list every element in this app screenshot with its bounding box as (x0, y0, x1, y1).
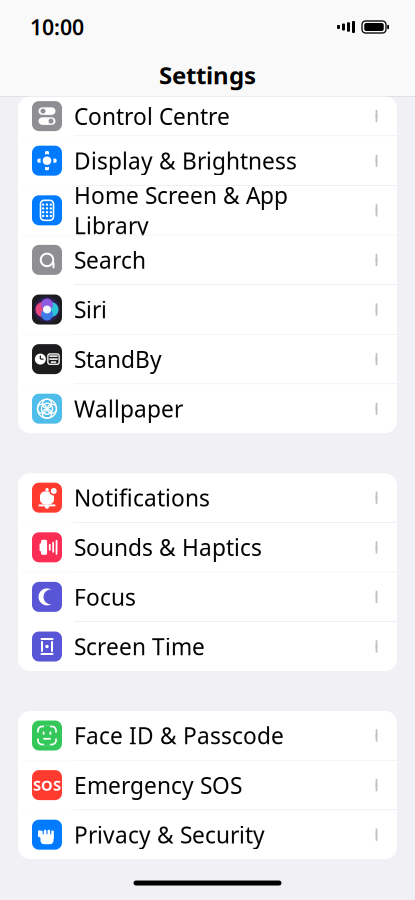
button[interactable]: Control Centre (18, 97, 397, 136)
staticText: Wallpaper (74, 394, 183, 424)
staticText: Notifications (74, 483, 210, 513)
staticText: Emergency SOS (74, 770, 242, 800)
button[interactable]: Face ID & Passcode (18, 711, 397, 761)
button[interactable]: SOS (18, 761, 397, 810)
staticText: Display & Brightness (74, 146, 297, 176)
button[interactable]: Sounds & Haptics (18, 523, 397, 572)
staticText: Sounds & Haptics (74, 532, 262, 562)
button[interactable]: Search (18, 235, 397, 285)
button[interactable]: Display & Brightness (18, 136, 397, 186)
staticText: Siri (74, 294, 107, 324)
staticText: Privacy & Security (74, 820, 265, 850)
staticText: Control Centre (74, 101, 230, 131)
button[interactable]: Notifications (18, 473, 397, 523)
staticText: Settings (159, 59, 256, 91)
staticText: 10:00 (30, 13, 84, 41)
button[interactable]: StandBy (18, 335, 397, 384)
staticText: Face ID & Passcode (74, 720, 284, 750)
button[interactable]: Wallpaper (18, 384, 397, 433)
staticText: StandBy (74, 344, 162, 374)
button[interactable]: Focus (18, 572, 397, 622)
staticText: Home Screen & App Library (74, 180, 288, 240)
staticText: Search (74, 245, 146, 275)
button[interactable]: Siri (18, 285, 397, 335)
button[interactable]: Screen Time (18, 622, 397, 671)
staticText: Focus (74, 582, 136, 612)
staticText: Screen Time (74, 631, 205, 661)
staticText: SOS (33, 775, 61, 795)
button[interactable]: Home Screen & App Library (18, 186, 397, 235)
button[interactable]: Privacy & Security (18, 810, 397, 859)
